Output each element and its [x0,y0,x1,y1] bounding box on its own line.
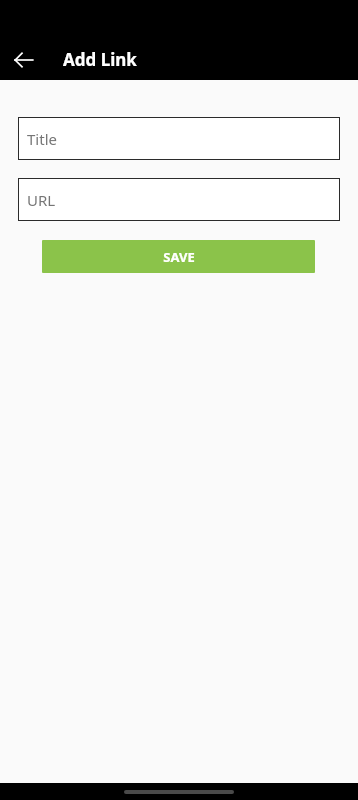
button[interactable]: SAVE [42,240,315,273]
button[interactable]: Title [18,117,340,160]
button[interactable]: Back [4,40,44,80]
staticText: Title [27,129,57,149]
staticText: URL [27,190,56,210]
staticText: SAVE [163,248,195,266]
staticText: Add Link [63,48,137,71]
button[interactable]: URL [18,178,340,221]
